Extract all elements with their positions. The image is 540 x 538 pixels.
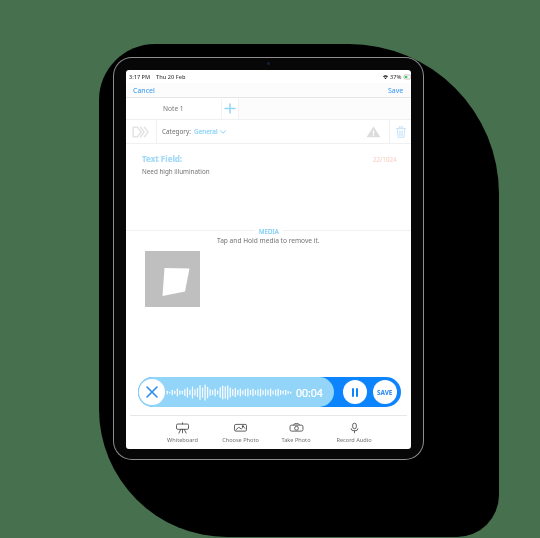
button[interactable]: Take Photo — [268, 422, 324, 444]
button[interactable]: Record Audio — [326, 422, 382, 444]
button[interactable]: Note 1 — [140, 98, 207, 119]
button[interactable]: Media thumbnail — [145, 251, 200, 307]
button[interactable]: Cancel recording — [139, 379, 165, 405]
staticText: Choose Photo — [222, 436, 259, 444]
staticText: 3:17 PM — [129, 73, 151, 81]
staticText: 00:04 — [296, 386, 323, 400]
button[interactable]: Pause — [343, 380, 367, 404]
staticText: Tap and Hold media to remove it. — [217, 236, 320, 245]
button[interactable]: Whiteboard — [154, 422, 210, 444]
button[interactable]: Cancel — [131, 85, 157, 97]
staticText: Category: — [162, 127, 191, 136]
staticText: Take Photo — [281, 436, 311, 444]
staticText: 37% — [390, 73, 402, 81]
staticText: General — [194, 127, 218, 136]
button[interactable]: SAVE — [373, 380, 397, 404]
staticText: Whiteboard — [167, 436, 198, 444]
button[interactable]: Expand — [128, 119, 153, 144]
staticText: 22/1024 — [373, 155, 397, 163]
staticText: Save — [388, 86, 404, 96]
staticText: Note 1 — [163, 104, 184, 113]
staticText: Need high illumination — [142, 167, 210, 176]
staticText: Record Audio — [336, 436, 372, 444]
staticText: Cancel — [133, 86, 155, 96]
button[interactable]: Delete — [391, 119, 411, 144]
button[interactable]: Warning — [360, 119, 387, 144]
button[interactable]: Save — [386, 85, 406, 97]
staticText: Thu 20 Feb — [156, 73, 186, 81]
staticText: Text Field: — [142, 153, 183, 164]
staticText: SAVE — [377, 388, 393, 397]
staticText: MEDIA — [259, 227, 279, 235]
button[interactable]: Choose Photo — [212, 422, 268, 444]
button[interactable]: General — [194, 127, 226, 136]
button[interactable]: Add note — [221, 98, 238, 119]
